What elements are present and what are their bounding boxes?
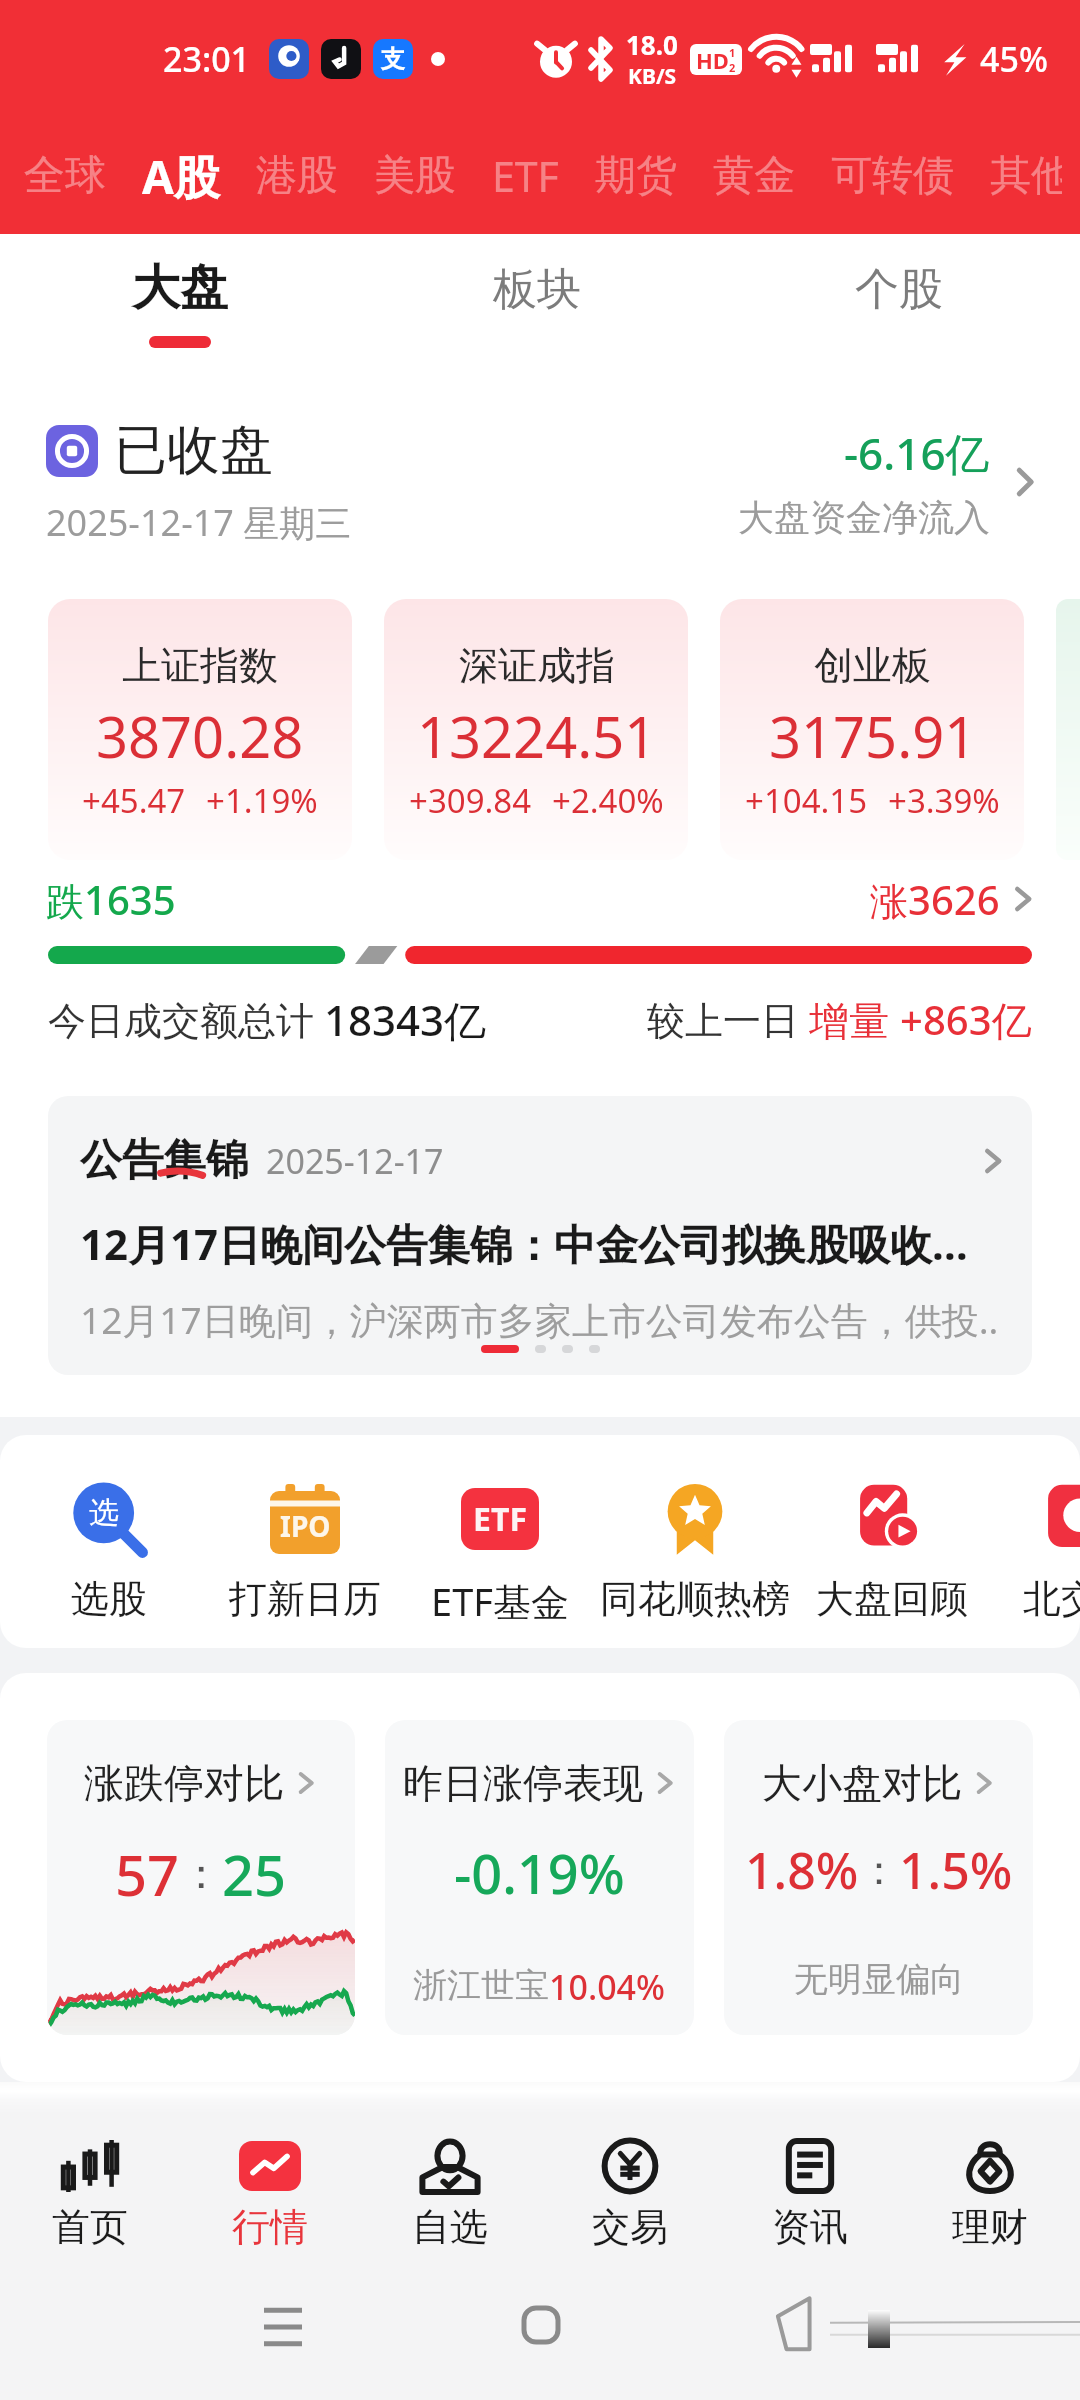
button[interactable]: 选 — [4, 1435, 214, 1623]
staticText: 理财 — [952, 2203, 1028, 2251]
button[interactable]: Home — [522, 2306, 560, 2344]
staticText: ETF — [473, 1497, 527, 1541]
staticText: 无明显偏向 — [794, 1958, 964, 2001]
staticText: 同花顺热榜 — [600, 1575, 790, 1623]
staticText: 港股 — [256, 150, 338, 202]
staticText: ： — [180, 1848, 222, 1901]
staticText: +45.47 — [82, 778, 186, 823]
button[interactable]: ETF — [474, 148, 577, 204]
staticText: 跌 — [46, 878, 84, 926]
staticText: 首页 — [52, 2203, 128, 2251]
button[interactable]: 期货 — [577, 150, 695, 202]
staticText: 上证指数 — [122, 641, 278, 690]
staticText: 1.8% — [745, 1836, 859, 1904]
staticText: HD — [696, 45, 729, 75]
button[interactable]: 涨跌停对比 — [47, 1720, 355, 2035]
staticText: KB/S — [628, 62, 677, 91]
staticText: ETF基金 — [431, 1575, 569, 1627]
button[interactable]: IPO — [200, 1435, 410, 1623]
staticText: 期货 — [595, 150, 677, 202]
button[interactable]: 个股 — [855, 262, 943, 317]
button[interactable]: 大盘 — [132, 258, 228, 348]
staticText: 57 — [115, 1836, 180, 1912]
staticText: 可转债 — [831, 150, 954, 202]
button[interactable]: 其他 — [972, 150, 1080, 202]
staticText: 深证成指 — [459, 641, 615, 690]
staticText: 打新日历 — [229, 1575, 381, 1623]
staticText: 个股 — [855, 262, 943, 317]
staticText: 涨 — [870, 878, 908, 926]
other: 大盘资金净流入详情 — [1012, 461, 1038, 503]
button[interactable]: 交易 — [540, 2082, 720, 2260]
button[interactable]: 公告集锦 — [48, 1096, 1032, 1375]
button[interactable]: 可转债 — [813, 150, 972, 202]
button[interactable]: 北交所 — [975, 1435, 1080, 1623]
button[interactable]: 创业板 — [720, 599, 1024, 860]
staticText: 大盘资金净流入 — [738, 495, 990, 540]
button[interactable]: 大盘回顾 — [787, 1435, 997, 1623]
staticText: 45% — [980, 36, 1048, 82]
staticText: 25 — [222, 1836, 287, 1912]
staticText: 1.5% — [899, 1836, 1013, 1904]
staticText: 2 — [729, 60, 736, 75]
button[interactable]: 行情 — [180, 2082, 360, 2260]
staticText: 选 — [89, 1494, 119, 1532]
staticText: 23:01 — [163, 36, 251, 82]
button[interactable]: Back — [775, 2296, 823, 2352]
button[interactable]: 同花顺热榜 — [590, 1435, 800, 1623]
button[interactable]: 资讯 — [720, 2082, 900, 2260]
button[interactable]: 理财 — [900, 2082, 1080, 2260]
staticText: 大盘回顾 — [816, 1575, 968, 1623]
staticText: 1635 — [84, 872, 176, 926]
button[interactable]: 跌 — [0, 860, 1080, 964]
button[interactable]: 上证指数 — [48, 599, 352, 860]
button[interactable]: ETF — [395, 1435, 605, 1627]
button[interactable]: 昨日涨停表现 — [385, 1720, 694, 2035]
button[interactable]: 首页 — [0, 2082, 180, 2260]
staticText: 资讯 — [772, 2203, 848, 2251]
staticText: IPO — [280, 1507, 331, 1545]
staticText: 其他 — [990, 150, 1062, 202]
staticText: 12月17日晚间，沪深两市多家上市公司发布公告，供投… — [80, 1294, 1000, 1345]
staticText: 2025-12-17 — [266, 1138, 444, 1184]
staticText: ： — [859, 1845, 899, 1895]
staticText: 12月17日晚间公告集锦：中金公司拟换股吸收… — [80, 1215, 969, 1272]
staticText: +309.84 — [409, 778, 532, 823]
button[interactable]: 板块 — [493, 262, 581, 317]
button[interactable]: 深证成指 — [384, 599, 688, 860]
staticText: +2.40% — [552, 778, 664, 823]
staticText: 选股 — [71, 1575, 147, 1623]
staticText: +1.19% — [206, 778, 318, 823]
button[interactable]: 港股 — [238, 150, 356, 202]
staticText: 板块 — [493, 262, 581, 317]
staticText: 自选 — [412, 2203, 488, 2251]
staticText: 大小盘对比 — [762, 1758, 962, 1808]
button[interactable]: 黄金 — [695, 150, 813, 202]
button[interactable]: A股 — [124, 145, 238, 208]
button[interactable]: 大小盘对比 — [724, 1720, 1033, 2035]
staticText: 10.04% — [549, 1964, 666, 2010]
staticText: 交易 — [592, 2203, 668, 2251]
staticText: 3870.28 — [96, 698, 304, 774]
staticText: -6.16亿 — [844, 423, 990, 483]
staticText: 大盘 — [132, 258, 228, 318]
staticText: +104.15 — [745, 778, 868, 823]
staticText: 13224.51 — [417, 698, 657, 774]
button[interactable]: Recents — [264, 2308, 302, 2346]
staticText: 18343亿 — [324, 991, 487, 1048]
staticText: ETF — [492, 148, 559, 204]
button[interactable]: 已收盘 — [0, 364, 1080, 599]
staticText: 18.0 — [626, 27, 678, 62]
staticText: 较上一日 — [647, 993, 809, 1045]
staticText: 浙江世宝 — [413, 1964, 549, 2007]
staticText: 2025-12-17 星期三 — [46, 498, 352, 547]
staticText: +3.39% — [888, 778, 1000, 823]
button[interactable]: 自选 — [360, 2082, 540, 2260]
button[interactable]: 全球 — [6, 150, 124, 202]
button[interactable]: 美股 — [356, 150, 474, 202]
staticText: 3626 — [908, 872, 1000, 926]
staticText: 全球 — [24, 150, 106, 202]
staticText: 行情 — [232, 2203, 308, 2251]
staticText: 支 — [381, 44, 405, 74]
staticText: 增量 — [809, 992, 900, 1047]
